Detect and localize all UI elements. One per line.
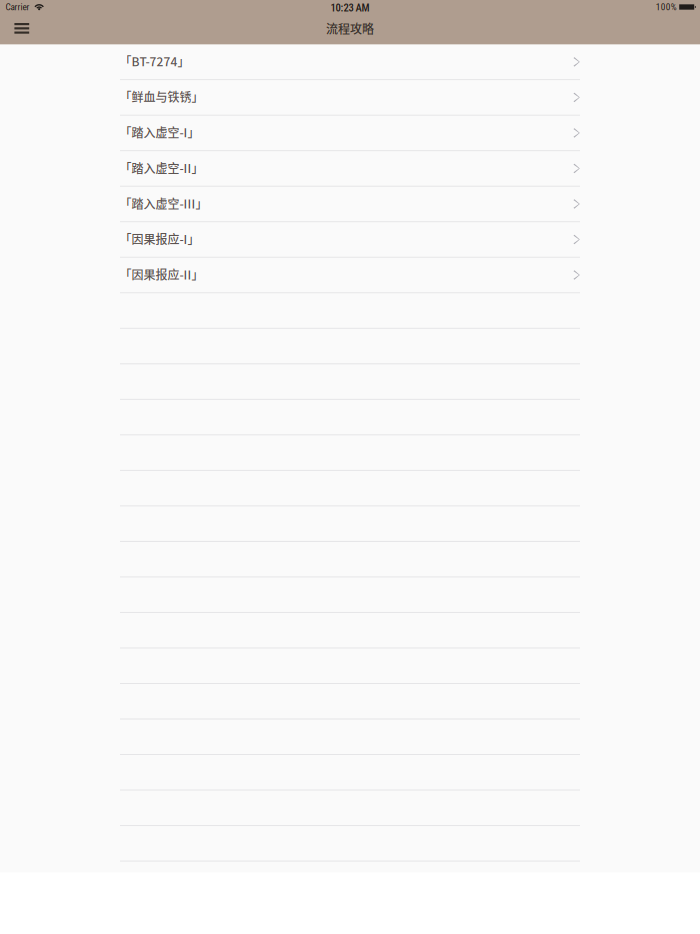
staticText: 「踏入虚空-I」	[120, 123, 200, 141]
staticText: Carrier	[5, 1, 29, 12]
staticText: 10:23 AM	[330, 1, 369, 14]
button[interactable]: 「鲜血与铁锈」	[0, 80, 700, 116]
staticText: 100%	[656, 1, 677, 12]
staticText: 「踏入虚空-II」	[120, 159, 204, 176]
staticText: 「因果报应-I」	[120, 230, 200, 247]
button[interactable]: 「BT-7274」	[0, 45, 700, 80]
button[interactable]: 「因果报应-II」	[0, 258, 700, 293]
staticText: 「鲜血与铁锈」	[120, 88, 204, 105]
button[interactable]: Menu	[0, 20, 41, 37]
button[interactable]: 「踏入虚空-III」	[0, 187, 700, 222]
button[interactable]: 「因果报应-I」	[0, 222, 700, 258]
staticText: 「踏入虚空-III」	[120, 194, 208, 212]
button[interactable]: 「踏入虚空-I」	[0, 116, 700, 151]
button[interactable]: 「踏入虚空-II」	[0, 151, 700, 187]
staticText: 「BT-7274」	[120, 52, 190, 70]
staticText: 「因果报应-II」	[120, 265, 204, 283]
staticText: 流程攻略	[326, 20, 374, 37]
